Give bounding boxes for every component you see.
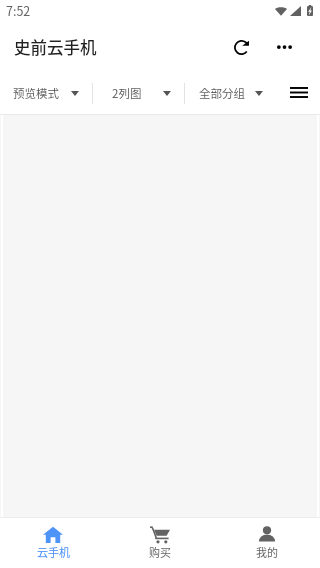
button[interactable]: 预览模式 bbox=[3, 72, 89, 114]
staticText: 购买 bbox=[149, 544, 171, 560]
staticText: 7:52 bbox=[6, 1, 31, 19]
staticText: 我的 bbox=[256, 544, 278, 560]
staticText: 预览模式 bbox=[13, 85, 59, 102]
button[interactable]: More options bbox=[268, 31, 300, 63]
staticText: 史前云手机 bbox=[14, 35, 97, 59]
staticText: 云手机 bbox=[37, 544, 70, 560]
staticText: 2列图 bbox=[112, 85, 142, 102]
button[interactable]: 我的 bbox=[213, 518, 320, 568]
button[interactable]: 云手机 bbox=[0, 518, 106, 568]
button[interactable]: 全部分组 bbox=[189, 72, 273, 114]
button[interactable]: Refresh bbox=[226, 31, 258, 63]
button[interactable]: 2列图 bbox=[102, 72, 181, 114]
button[interactable]: 购买 bbox=[106, 518, 213, 568]
staticText: 全部分组 bbox=[199, 85, 245, 102]
button[interactable]: List layout bbox=[283, 76, 315, 108]
